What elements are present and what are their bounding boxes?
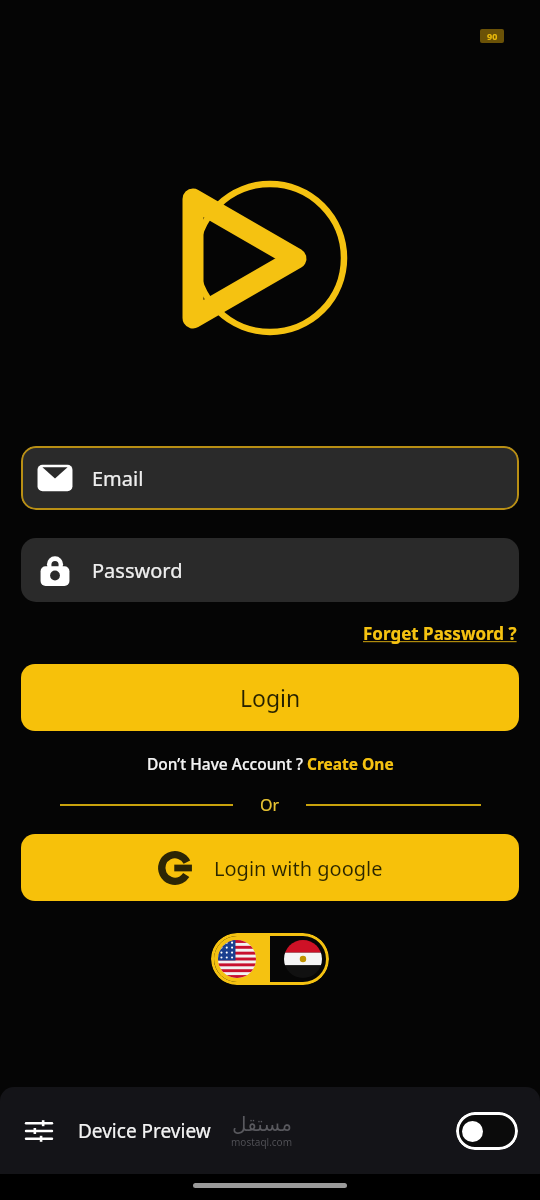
button[interactable]: Email: [21, 446, 519, 510]
staticText: mostaql.com: [231, 1135, 293, 1149]
button[interactable]: Change language: [211, 933, 329, 985]
staticText: 90: [487, 30, 498, 42]
staticText: Or: [260, 794, 280, 816]
staticText: Login with google: [214, 855, 383, 882]
staticText: Don’t Have Account ? Create One: [147, 753, 394, 774]
button[interactable]: Forget Password ?: [361, 620, 519, 647]
staticText: Forget Password ?: [363, 622, 517, 645]
staticText: Login: [240, 682, 301, 713]
button[interactable]: Login with google: [21, 834, 519, 901]
button[interactable]: Preview settings: [22, 1114, 56, 1148]
staticText: Password: [92, 557, 183, 584]
staticText: Device Preview: [78, 1118, 211, 1144]
button[interactable]: Don’t Have Account ? Create One: [143, 751, 398, 776]
button[interactable]: Toggle device preview: [456, 1112, 518, 1150]
staticText: مستقل: [232, 1112, 292, 1135]
button[interactable]: Password: [21, 538, 519, 602]
staticText: Email: [92, 465, 144, 492]
button[interactable]: Login: [21, 664, 519, 731]
